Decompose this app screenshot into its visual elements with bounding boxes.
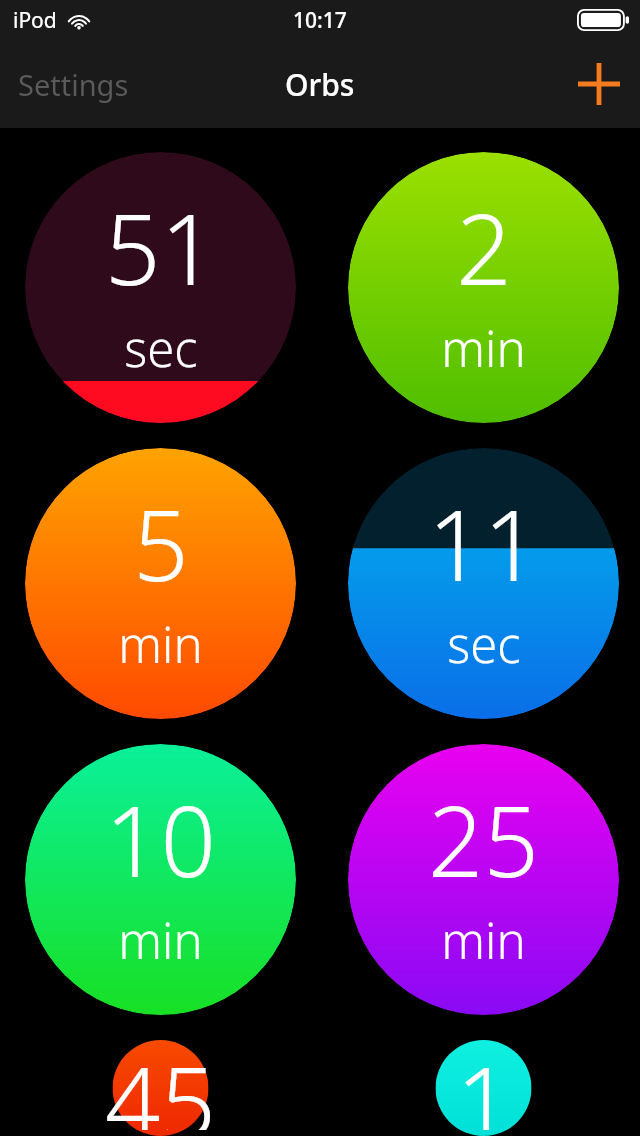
button[interactable]: 25 <box>348 744 619 1015</box>
button[interactable]: 5 <box>25 448 296 719</box>
staticText: 45 <box>105 1040 216 1130</box>
staticText: Orbs <box>285 64 355 105</box>
staticText: 10:17 <box>293 6 347 35</box>
staticText: min <box>118 907 203 974</box>
staticText: 2 <box>456 181 512 313</box>
staticText: min <box>441 907 526 974</box>
button[interactable]: 2 <box>348 152 619 423</box>
staticText: min <box>441 315 526 382</box>
staticText: min <box>118 611 203 678</box>
staticText: 10 <box>105 773 216 905</box>
staticText: 25 <box>428 773 539 905</box>
button[interactable]: 51 <box>25 152 296 423</box>
button[interactable]: 11 <box>348 448 619 719</box>
staticText: 5 <box>133 477 189 609</box>
staticText: sec <box>447 611 521 678</box>
button[interactable]: 45 <box>25 1040 296 1136</box>
staticText: 51 <box>105 181 216 313</box>
staticText: Settings <box>18 65 129 104</box>
staticText: 11 <box>428 477 539 609</box>
button[interactable]: 10 <box>25 744 296 1015</box>
staticText: sec <box>124 315 198 382</box>
staticText: 1 <box>456 1040 512 1130</box>
button[interactable]: Settings <box>0 51 147 118</box>
button[interactable]: Add timer <box>558 49 640 119</box>
staticText: iPod <box>13 6 57 35</box>
button[interactable]: 1 <box>348 1040 619 1136</box>
